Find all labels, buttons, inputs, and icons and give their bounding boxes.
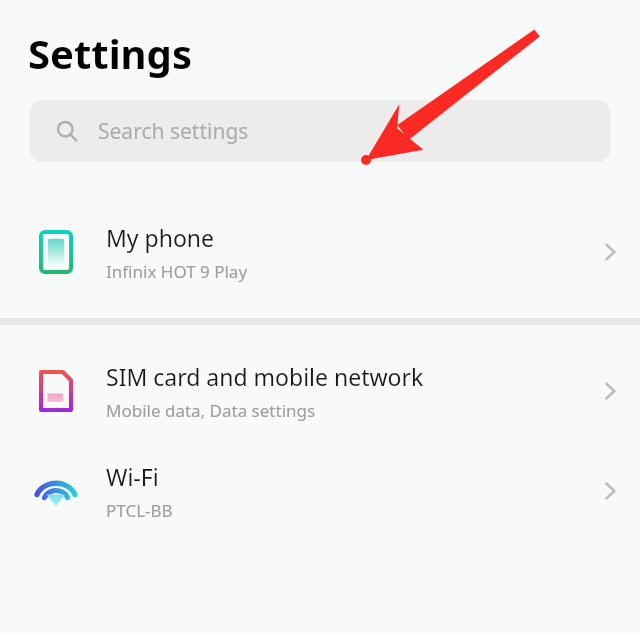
staticText: Settings <box>28 26 192 80</box>
staticText: Mobile data, Data settings <box>106 399 316 422</box>
button[interactable]: Wi-Fi <box>0 441 640 541</box>
button[interactable]: My phone <box>0 202 640 302</box>
staticText: Search settings <box>98 117 249 146</box>
staticText: SIM card and mobile network <box>106 361 424 392</box>
button[interactable]: Search settings <box>30 100 610 162</box>
button[interactable]: SIM card and mobile network <box>0 341 640 441</box>
staticText: PTCL-BB <box>106 499 173 522</box>
staticText: Wi-Fi <box>106 461 159 492</box>
staticText: My phone <box>106 222 215 253</box>
staticText: Infinix HOT 9 Play <box>106 260 248 283</box>
